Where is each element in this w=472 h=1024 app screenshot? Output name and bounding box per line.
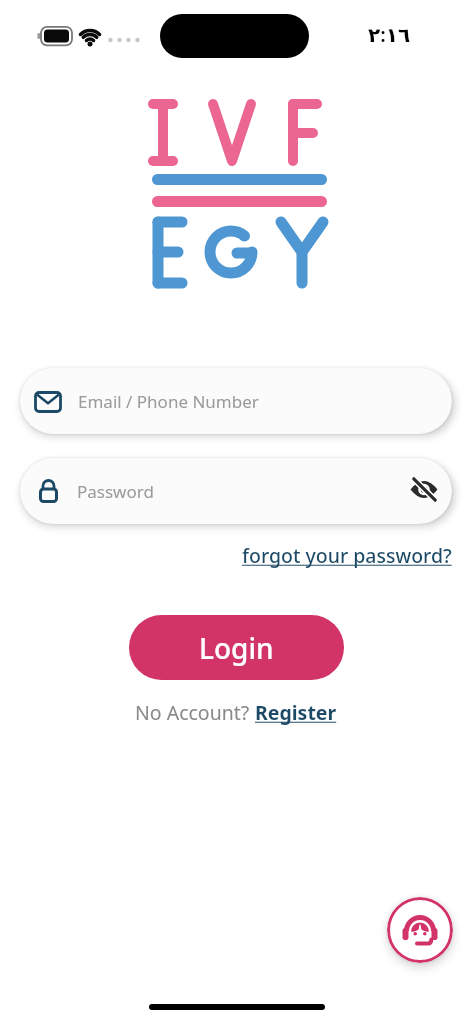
staticText: Password <box>77 480 154 503</box>
staticText: Email / Phone Number <box>78 390 259 413</box>
button[interactable]: Register <box>255 699 337 726</box>
button[interactable]: Password <box>20 458 452 524</box>
staticText: No Account? <box>135 699 255 726</box>
button[interactable]: Email / Phone Number <box>20 368 452 434</box>
button[interactable] <box>387 897 453 963</box>
button[interactable]: forgot your password? <box>242 542 452 569</box>
staticText: Login <box>199 629 274 667</box>
staticText: ٢:١٦ <box>368 21 411 48</box>
button[interactable]: Login <box>129 615 344 680</box>
